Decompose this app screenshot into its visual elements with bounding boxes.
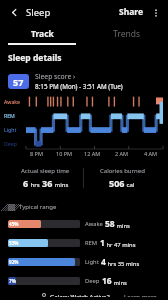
staticText: 53%	[9, 240, 19, 246]
staticText: Light	[4, 126, 17, 133]
staticText: mins	[115, 222, 130, 230]
staticText: REM	[4, 112, 15, 119]
staticText: Learn more	[124, 293, 157, 297]
staticText: Awake	[85, 220, 103, 228]
staticText: 58	[105, 218, 115, 230]
staticText: 36	[42, 177, 53, 189]
staticText: hrs 35 mins	[106, 260, 140, 268]
staticText: 16	[102, 275, 112, 287]
staticText: Awake	[4, 98, 20, 105]
staticText: 8 PM	[30, 150, 43, 157]
staticText: 2 AM	[115, 150, 129, 157]
staticText: Share	[119, 6, 144, 18]
staticText: Trends	[113, 28, 140, 40]
staticText: 1	[100, 237, 105, 249]
staticText: mins	[112, 279, 127, 287]
staticText: Sleep	[26, 6, 51, 19]
button[interactable]: Track	[0, 24, 84, 43]
staticText: Light	[85, 258, 99, 266]
staticText: cal	[125, 181, 135, 189]
staticText: REM	[85, 239, 98, 247]
button[interactable]: 7%	[0, 271, 168, 290]
staticText: hrs	[29, 181, 42, 189]
staticText: Actual sleep time	[21, 167, 70, 175]
staticText: Deep	[85, 277, 100, 285]
button[interactable]: 57	[0, 72, 168, 91]
staticText: mins	[53, 181, 69, 189]
staticText: Sleep score ›	[35, 72, 76, 81]
staticText: 12 AM	[84, 150, 101, 157]
staticText: 8:15 PM (Mon) - 3:51 AM (Tue)	[35, 82, 123, 91]
staticText: 6	[23, 177, 29, 189]
staticText: 10 PM	[56, 150, 73, 157]
staticText: Typical range	[19, 203, 57, 211]
staticText: 4	[101, 256, 106, 268]
button[interactable]: Trends	[84, 24, 168, 43]
staticText: Track	[31, 28, 54, 40]
staticText: 4 AM	[144, 150, 158, 157]
button[interactable]: Back	[5, 3, 23, 21]
staticText: 45%	[9, 221, 19, 227]
staticText: 92%	[9, 259, 19, 265]
button[interactable]: 92%	[0, 252, 168, 271]
button[interactable]: 45%	[0, 214, 168, 233]
staticText: Galaxy Watch Active2	[50, 293, 110, 297]
staticText: hr 47 mins	[105, 241, 136, 249]
staticText: 57	[13, 76, 24, 88]
staticText: 7%	[9, 278, 16, 284]
button[interactable]: Learn more	[121, 290, 160, 300]
staticText: 506	[109, 177, 125, 189]
staticText: Sleep details	[8, 52, 62, 64]
button[interactable]: Share	[116, 3, 147, 21]
staticText: Calories burned	[100, 167, 145, 175]
button[interactable]: More options	[148, 5, 163, 20]
button[interactable]: Galaxy Watch Active2	[38, 290, 113, 300]
button[interactable]: 53%	[0, 233, 168, 252]
staticText: Deep	[4, 140, 17, 147]
